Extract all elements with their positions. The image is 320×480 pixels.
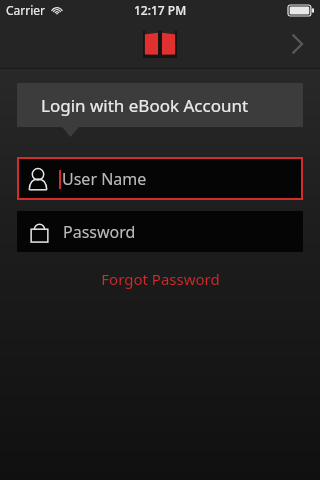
staticText: 12:17 PM	[134, 2, 187, 18]
button[interactable]: Password	[17, 211, 303, 252]
staticText: User Name	[62, 168, 147, 190]
staticText: Forgot Password	[101, 269, 220, 289]
button[interactable]: User Name	[17, 157, 303, 200]
button[interactable]: Login with eBook Account	[17, 83, 303, 127]
button[interactable]: Forgot Password	[91, 265, 230, 293]
staticText: Login with eBook Account	[41, 94, 249, 117]
button[interactable]: eBook home	[140, 24, 180, 64]
staticText: Password	[63, 221, 136, 243]
button[interactable]: Next	[274, 20, 320, 68]
staticText: Carrier	[6, 2, 46, 18]
